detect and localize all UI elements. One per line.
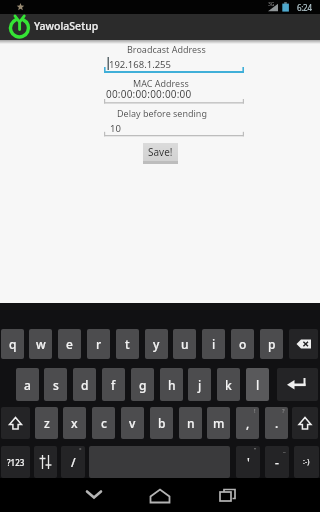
button[interactable]: i [202,329,225,359]
button[interactable]: r [87,329,110,359]
staticText: ' [247,454,250,470]
staticText: w [36,336,46,352]
button[interactable]: f [102,368,125,401]
staticText: p [268,336,276,352]
staticText: u [181,336,189,352]
button[interactable]: k [217,368,240,401]
staticText: i [212,336,216,352]
staticText: n [187,415,195,431]
staticText: . [275,415,279,431]
staticText: f [111,377,116,393]
button[interactable] [1,407,30,439]
button[interactable]: o [231,329,254,359]
staticText: Delay before sending [117,107,207,119]
staticText: / [71,454,76,470]
staticText: 6:24 [297,2,312,13]
button[interactable]: / [61,446,85,478]
button[interactable] [78,484,110,506]
staticText: 00:00:00:00:00:00 [106,87,192,101]
staticText: v [129,415,136,431]
button[interactable]: :-) [294,446,319,478]
staticText: l [256,377,260,393]
staticText: a [24,377,31,393]
button[interactable]: 10 [104,119,244,137]
button[interactable]: y [145,329,168,359]
button[interactable]: e [58,329,81,359]
button[interactable]: u [173,329,196,359]
staticText: c [101,415,107,431]
button[interactable]: q [1,329,24,359]
staticText: Save! [148,145,173,159]
staticText: d [81,377,89,393]
button[interactable]: j [188,368,211,401]
button[interactable]: a [16,368,39,401]
staticText: 192.168.1.255 [109,58,171,71]
staticText: ! [254,407,256,415]
staticText: r [96,336,102,352]
staticText: _ [283,446,286,454]
button[interactable]: d [73,368,96,401]
button[interactable] [144,484,176,506]
button[interactable]: m [207,407,230,439]
staticText: " [254,446,257,454]
staticText: ?123 [7,457,25,468]
button[interactable]: ' [236,446,260,478]
staticText: ° [79,446,82,454]
staticText: g [139,377,147,393]
staticText: h [168,377,176,393]
button[interactable]: Save! [143,143,178,161]
staticText: m [213,415,225,431]
button[interactable]: l [246,368,269,401]
staticText: 10 [110,122,121,135]
button[interactable]: n [179,407,202,439]
button[interactable]: w [29,329,52,359]
staticText: s [53,377,59,393]
button[interactable]: x [63,407,86,439]
button[interactable] [277,368,318,401]
button[interactable]: z [35,407,58,439]
staticText: MAC Address [133,77,189,88]
staticText: b [158,415,166,431]
staticText: t [125,336,130,352]
button[interactable]: h [160,368,183,401]
staticText: YawolaSetup [34,19,99,33]
button[interactable]: p [260,329,283,359]
button[interactable]: - [265,446,289,478]
staticText: - [275,454,279,470]
button[interactable]: ?123 [1,446,30,478]
staticText: x [71,415,78,431]
staticText: Broadcast Address [127,43,206,55]
staticText: ? [282,407,285,415]
staticText: q [9,336,17,352]
staticText: :-) [303,457,310,467]
button[interactable] [289,329,318,359]
button[interactable] [34,446,57,478]
staticText: e [66,336,73,352]
button[interactable]: 00:00:00:00:00:00 [104,85,244,103]
staticText: , [246,415,250,431]
button[interactable] [292,407,318,439]
button[interactable]: , [236,407,259,439]
staticText: o [239,336,247,352]
staticText: k [225,377,232,393]
staticText: 3G [268,1,275,8]
button[interactable]: . [265,407,288,439]
button[interactable]: s [44,368,67,401]
staticText: z [44,415,50,431]
button[interactable]: c [92,407,115,439]
button[interactable]: b [150,407,173,439]
button[interactable]: v [121,407,144,439]
button[interactable]: g [131,368,154,401]
button[interactable] [211,484,243,506]
staticText: y [153,336,160,352]
staticText: j [198,377,202,393]
button[interactable]: t [116,329,139,359]
button[interactable]: 192.168.1.255 [104,55,244,73]
button[interactable]: YawolaSetup [0,14,320,40]
